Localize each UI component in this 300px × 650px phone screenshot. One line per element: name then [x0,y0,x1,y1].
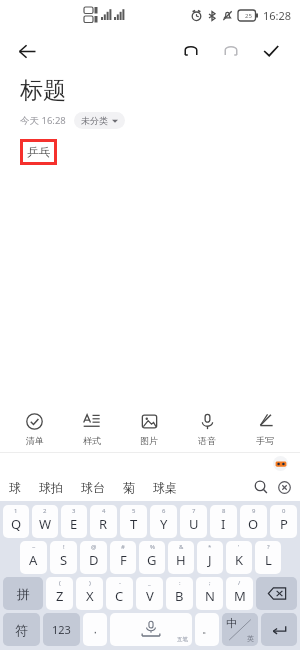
button[interactable]: 清单 [6,406,63,452]
button[interactable]: 球 [0,477,30,498]
staticText: D [89,551,99,569]
staticText: U [189,515,199,533]
staticText: 未分类 [81,115,108,126]
staticText: _ [148,579,151,587]
button[interactable]: @ [80,541,107,574]
staticText: 5 [132,507,136,515]
staticText: ; [209,579,211,587]
button[interactable]: 。 [195,613,219,646]
staticText: 25 [245,12,252,20]
button[interactable]: # [110,541,136,574]
staticText: & [179,543,184,551]
button[interactable]: ' [226,541,252,574]
staticText: 英 [247,634,254,643]
staticText: W [39,515,52,533]
button[interactable]: - [106,577,133,610]
button[interactable]: 拼 [3,577,43,610]
button[interactable]: 未分类 [74,112,125,129]
button[interactable]: 球桌 [144,477,186,498]
button[interactable]: ~ [20,541,47,574]
button[interactable]: 3 [61,505,87,538]
button[interactable]: 菊 [114,477,144,498]
staticText: H [176,551,186,569]
staticText: 拼 [17,586,30,602]
button[interactable]: 123 [43,613,80,646]
staticText: B [175,587,184,605]
button[interactable]: : [166,577,193,610]
button[interactable]: 6 [150,505,177,538]
button[interactable]: Undo [174,34,208,68]
button[interactable]: & [168,541,194,574]
staticText: ' [238,543,240,551]
staticText: X [86,587,94,605]
staticText: 语音 [198,435,216,446]
button[interactable]: ( [46,577,73,610]
staticText: 7 [192,507,196,515]
staticText: 6 [162,507,166,515]
staticText: 标题 [20,76,66,105]
button[interactable]: 7 [180,505,207,538]
button[interactable]: 语音 [178,406,236,452]
staticText: ， [90,623,100,636]
button[interactable]: / [226,577,253,610]
button[interactable]: Close candidates [274,474,294,500]
button[interactable]: ! [50,541,77,574]
staticText: 3 [72,507,76,515]
staticText: 2 [43,507,47,515]
button[interactable]: Search [248,474,274,500]
button[interactable]: 图片 [120,406,178,452]
staticText: 1 [14,507,18,515]
staticText: V [146,587,154,605]
staticText: I [221,515,226,533]
staticText: 样式 [83,435,101,446]
staticText: R [99,515,108,533]
button[interactable]: 球拍 [30,477,72,498]
button[interactable]: Redo [214,34,248,68]
button[interactable]: ) [76,577,103,610]
button[interactable]: 0 [270,505,297,538]
staticText: 。 [202,623,212,636]
button[interactable]: 1 [3,505,29,538]
button[interactable]: 球台 [72,477,114,498]
staticText: - [119,579,121,587]
staticText: Z [56,587,64,605]
staticText: ) [89,579,91,587]
staticText: 8 [222,507,226,515]
staticText: Q [11,515,22,533]
staticText: 清单 [26,435,44,446]
button[interactable]: 样式 [63,406,120,452]
staticText: F [120,551,127,569]
button[interactable]: * [197,541,223,574]
button[interactable]: 乒乓 [27,145,50,159]
button[interactable]: % [139,541,165,574]
staticText: 今天 16:28 [20,114,66,127]
button[interactable]: Space [110,613,192,646]
button[interactable]: Done [254,34,288,68]
button[interactable]: 4 [90,505,117,538]
button[interactable]: Chinese English toggle [222,613,258,646]
button[interactable]: Back [10,34,44,68]
button[interactable]: 5 [120,505,147,538]
staticText: 中 [226,616,237,630]
button[interactable]: Backspace [256,577,297,610]
button[interactable]: 2 [32,505,58,538]
staticText: ~ [32,543,36,551]
button[interactable]: 8 [210,505,237,538]
button[interactable]: Input method logo [273,456,288,471]
staticText: T [130,515,138,533]
button[interactable]: _ [136,577,163,610]
staticText: S [60,551,68,569]
staticText: 图片 [140,435,158,446]
button[interactable]: 符 [3,613,40,646]
button[interactable]: 9 [240,505,267,538]
staticText: Y [160,515,168,533]
button[interactable]: ， [83,613,107,646]
button[interactable]: ? [255,541,281,574]
button[interactable]: Enter [261,613,297,646]
button[interactable]: ; [196,577,223,610]
staticText: 球 [9,480,21,495]
staticText: % [150,543,155,551]
staticText: J [208,551,212,569]
button[interactable]: 手写 [236,406,294,452]
staticText: 9 [252,507,256,515]
